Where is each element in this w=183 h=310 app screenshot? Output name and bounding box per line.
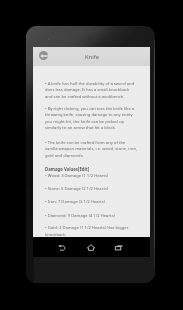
button[interactable]: Back <box>54 239 70 255</box>
staticText: you might hit, the knife can be picked u… <box>45 119 125 125</box>
staticText: similarly to an arrow that hit a block. <box>45 125 116 131</box>
staticText: vanilla weapon materials, i.e. wood, sto… <box>45 146 138 152</box>
staticText: throwing knife, causing damage to any en… <box>45 112 133 118</box>
staticText: • The knife can be crafted from any of t… <box>45 140 126 146</box>
staticText: • Wood: 3 Damage (1 1/2 Hearts) <box>45 173 109 179</box>
button[interactable]: Back <box>39 51 48 60</box>
staticText: Damage Values[Edit] <box>45 166 90 172</box>
staticText: • By right clicking, you can toss the kn… <box>45 106 135 112</box>
staticText: and can be crafted without a workbench. <box>45 94 125 100</box>
button[interactable]: Recent apps <box>111 239 127 255</box>
staticText: • A knife has half the durability of a s… <box>45 81 135 87</box>
button[interactable]: Home <box>83 239 99 255</box>
staticText: gold and diamonds. <box>45 153 84 159</box>
staticText: knockback. <box>45 232 67 238</box>
staticText: Knife <box>85 53 99 61</box>
staticText: • Gold: 3 Damage (1 1/2 Hearts) Has bigg… <box>45 225 129 231</box>
staticText: • Iron: 7 Damage (3 1/2 Hearts) <box>45 199 106 205</box>
staticText: does less damage. It has a small knockba… <box>45 87 130 93</box>
staticText: • Stone: 5 Damage (2 1/2 Hearts) <box>45 186 109 192</box>
staticText: • Diamond: 9 Damage (4 1/2 Hearts) <box>45 213 115 219</box>
